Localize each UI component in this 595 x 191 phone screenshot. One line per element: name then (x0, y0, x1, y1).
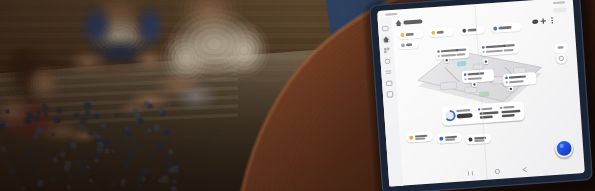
button[interactable]: Grid view (538, 22, 548, 32)
button[interactable]: Home (386, 26, 400, 38)
button[interactable]: Smart time (461, 138, 489, 149)
button[interactable]: Devices (464, 29, 491, 39)
button[interactable]: Bedroom sensor (463, 73, 497, 86)
button[interactable]: Wi-Fi (402, 38, 424, 48)
button[interactable]: Office sensor (504, 79, 539, 92)
button[interactable]: Smart light (432, 135, 460, 146)
button[interactable]: Navigation menu (386, 14, 400, 26)
button[interactable]: Kitchen sensor (483, 47, 523, 60)
button[interactable]: Humidity (433, 28, 460, 38)
button[interactable]: Selected filter (495, 30, 528, 40)
button[interactable]: Recenter (558, 62, 570, 74)
button[interactable]: Living room sensor (438, 48, 474, 61)
button[interactable]: My home (404, 16, 448, 26)
button[interactable]: Add (553, 150, 573, 170)
button[interactable]: Add device (549, 23, 558, 32)
button[interactable]: Energy summary (440, 108, 525, 128)
button[interactable]: Smart heating (402, 132, 431, 143)
button[interactable]: Map layers (556, 48, 571, 59)
button[interactable]: Temperature (402, 27, 430, 37)
